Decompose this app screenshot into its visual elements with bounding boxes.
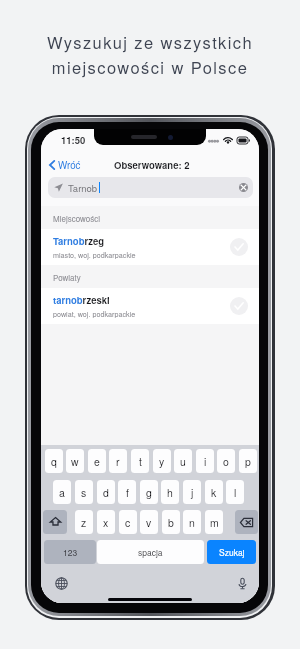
button[interactable]: t <box>131 449 149 473</box>
staticText: f <box>126 485 129 500</box>
button[interactable]: Wyczyść <box>239 183 248 192</box>
staticText: 123 <box>63 546 78 558</box>
button[interactable]: x <box>97 510 115 534</box>
staticText: v <box>146 515 152 530</box>
staticText: tarnobrzeski <box>53 293 110 307</box>
button[interactable]: v <box>140 510 158 534</box>
staticText: u <box>180 454 186 469</box>
button[interactable]: Wróć <box>46 154 84 176</box>
staticText: Wyszukuj ze wszystkich miejscowości w Po… <box>0 30 300 78</box>
button[interactable]: r <box>109 449 127 473</box>
button[interactable]: c <box>119 510 137 534</box>
button[interactable]: i <box>196 449 214 473</box>
staticText: e <box>94 454 100 469</box>
button[interactable]: Zmień klawiaturę <box>55 577 68 590</box>
staticText: Wróć <box>58 158 81 172</box>
button[interactable]: u <box>174 449 192 473</box>
button[interactable]: g <box>140 480 158 504</box>
button[interactable]: Backspace <box>235 510 258 534</box>
button[interactable]: y <box>153 449 171 473</box>
staticText: Obserwowane: 2 <box>114 158 190 172</box>
button[interactable]: 123 <box>44 540 96 564</box>
staticText: b <box>168 515 174 530</box>
button[interactable]: d <box>97 480 115 504</box>
staticText: n <box>189 515 195 530</box>
staticText: s <box>81 485 87 500</box>
button[interactable]: n <box>183 510 201 534</box>
staticText: t <box>139 454 142 469</box>
staticText: Miejscowości <box>53 213 100 224</box>
staticText: Szukaj <box>219 546 245 558</box>
button[interactable]: a <box>53 480 71 504</box>
staticText: l <box>234 485 237 500</box>
staticText: r <box>116 454 120 469</box>
button[interactable]: m <box>205 510 223 534</box>
staticText: 11:50 <box>61 133 86 147</box>
button[interactable]: w <box>66 449 84 473</box>
staticText: a <box>59 485 65 500</box>
staticText: d <box>103 485 109 500</box>
button[interactable]: z <box>75 510 93 534</box>
staticText: o <box>223 454 229 469</box>
button[interactable]: Szukaj <box>207 540 256 564</box>
staticText: Tarnob <box>68 181 98 195</box>
staticText: y <box>159 454 165 469</box>
staticText: q <box>51 454 57 469</box>
button[interactable]: q <box>45 449 63 473</box>
staticText: z <box>81 515 87 530</box>
button[interactable]: Tarnobrzeg <box>41 229 259 265</box>
staticText: g <box>146 485 152 500</box>
staticText: w <box>71 454 79 469</box>
staticText: Tarnobrzeg <box>53 234 105 248</box>
button[interactable]: b <box>162 510 180 534</box>
button[interactable]: h <box>161 480 179 504</box>
staticText: miasto, woj. podkarpackie <box>53 250 136 260</box>
staticText: p <box>245 454 251 469</box>
button[interactable]: f <box>118 480 136 504</box>
staticText: k <box>211 485 217 500</box>
staticText: m <box>210 515 219 530</box>
button[interactable]: Dyktuj <box>236 577 249 590</box>
button[interactable]: p <box>239 449 257 473</box>
staticText: c <box>125 515 131 530</box>
staticText: j <box>191 485 194 500</box>
staticText: h <box>167 485 173 500</box>
button[interactable]: Tarnob <box>48 177 253 198</box>
button[interactable]: e <box>88 449 106 473</box>
staticText: Powiaty <box>53 272 81 283</box>
button[interactable]: l <box>226 480 244 504</box>
button[interactable]: j <box>183 480 201 504</box>
staticText: i <box>204 454 207 469</box>
staticText: x <box>103 515 109 530</box>
staticText: spacja <box>138 546 163 558</box>
button[interactable]: o <box>217 449 235 473</box>
button[interactable]: spacja <box>97 540 204 564</box>
button[interactable]: k <box>205 480 223 504</box>
button[interactable]: s <box>75 480 93 504</box>
button[interactable]: tarnobrzeski <box>41 288 259 324</box>
button[interactable]: Shift <box>43 510 67 534</box>
staticText: powiat, woj. podkarpackie <box>53 309 136 319</box>
